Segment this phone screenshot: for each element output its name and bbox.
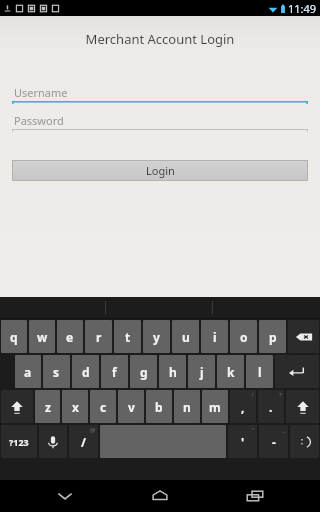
- staticText: s: [53, 364, 60, 380]
- staticText: k: [227, 364, 235, 380]
- button[interactable]: x: [62, 390, 88, 423]
- staticText: u: [182, 329, 190, 345]
- staticText: a: [24, 364, 32, 380]
- button[interactable]: /: [69, 425, 98, 458]
- staticText: t: [125, 329, 131, 345]
- button[interactable]: Backspace: [288, 320, 319, 353]
- button[interactable]: h: [159, 355, 186, 388]
- button[interactable]: z: [35, 390, 60, 423]
- staticText: j: [200, 364, 204, 380]
- button[interactable]: k: [217, 355, 244, 388]
- button[interactable]: .: [258, 390, 284, 423]
- button[interactable]: s: [43, 355, 70, 388]
- button[interactable]: d: [72, 355, 99, 388]
- staticText: ?: [279, 391, 282, 399]
- button[interactable]: q: [1, 320, 27, 353]
- button[interactable]: o: [230, 320, 257, 353]
- staticText: d: [82, 364, 90, 380]
- button[interactable]: Voice input: [39, 425, 67, 458]
- button[interactable]: Password: [12, 112, 308, 132]
- staticText: !: [252, 391, 254, 399]
- button[interactable]: r: [85, 320, 112, 353]
- button[interactable]: v: [118, 390, 144, 423]
- staticText: Merchant Account Login: [0, 30, 320, 48]
- button[interactable]: y: [143, 320, 170, 353]
- button[interactable]: i: [201, 320, 228, 353]
- staticText: i: [213, 329, 217, 345]
- button[interactable]: ': [228, 425, 257, 458]
- button[interactable]: m: [202, 390, 228, 423]
- staticText: b: [155, 399, 163, 415]
- staticText: r: [96, 329, 102, 345]
- button[interactable]: Shift: [286, 390, 319, 423]
- button[interactable]: c: [90, 390, 116, 423]
- staticText: Username: [14, 85, 68, 100]
- button[interactable]: t: [114, 320, 141, 353]
- staticText: o: [240, 329, 248, 345]
- staticText: v: [128, 399, 135, 415]
- button[interactable]: p: [259, 320, 286, 353]
- staticText: c: [100, 399, 107, 415]
- button[interactable]: Emoji: [290, 425, 319, 458]
- button[interactable]: Recent apps: [225, 480, 285, 512]
- staticText: @: [90, 426, 96, 434]
- button[interactable]: Home: [130, 480, 190, 512]
- staticText: Password: [14, 113, 64, 128]
- button[interactable]: f: [101, 355, 128, 388]
- button[interactable]: l: [246, 355, 273, 388]
- button[interactable]: w: [29, 320, 55, 353]
- button[interactable]: e: [57, 320, 83, 353]
- staticText: -: [272, 434, 276, 450]
- button[interactable]: -: [259, 425, 288, 458]
- button[interactable]: b: [146, 390, 172, 423]
- staticText: /: [81, 434, 86, 450]
- staticText: ": [252, 426, 255, 434]
- button[interactable]: j: [188, 355, 215, 388]
- button[interactable]: Shift: [1, 390, 33, 423]
- staticText: ': [241, 434, 245, 450]
- staticText: e: [66, 329, 74, 345]
- staticText: x: [72, 399, 79, 415]
- staticText: 11:49: [288, 1, 317, 16]
- staticText: m: [209, 399, 221, 415]
- staticText: z: [45, 399, 51, 415]
- staticText: l: [258, 364, 262, 380]
- button[interactable]: ?123: [1, 425, 37, 458]
- button[interactable]: g: [130, 355, 157, 388]
- button[interactable]: a: [15, 355, 41, 388]
- staticText: ,: [241, 399, 245, 415]
- button[interactable]: ,: [230, 390, 256, 423]
- staticText: w: [37, 329, 48, 345]
- button[interactable]: u: [172, 320, 199, 353]
- staticText: n: [183, 399, 191, 415]
- staticText: q: [10, 329, 18, 345]
- staticText: f: [112, 364, 117, 380]
- button[interactable]: n: [174, 390, 200, 423]
- staticText: p: [269, 329, 277, 345]
- staticText: _: [283, 426, 286, 434]
- staticText: g: [140, 364, 148, 380]
- button[interactable]: Hide keyboard: [35, 480, 95, 512]
- staticText: y: [153, 329, 160, 345]
- staticText: ?123: [9, 436, 29, 448]
- button[interactable]: Login: [12, 160, 308, 181]
- staticText: Login: [146, 163, 175, 178]
- button[interactable]: Enter: [275, 355, 319, 388]
- staticText: .: [269, 399, 273, 415]
- button[interactable]: Username: [12, 84, 308, 104]
- staticText: h: [169, 364, 177, 380]
